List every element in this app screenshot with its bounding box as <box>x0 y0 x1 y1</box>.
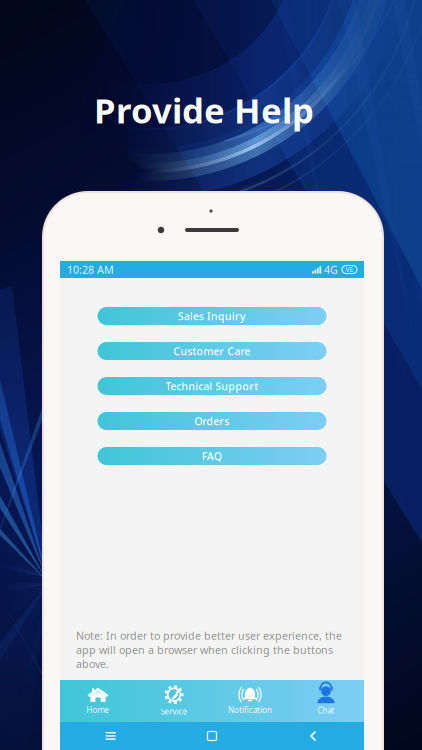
staticText: Chat <box>317 705 334 716</box>
button[interactable]: Orders <box>97 412 326 430</box>
staticText: Note: In order to provide better user ex… <box>76 628 342 671</box>
staticText: 10:28 AM <box>67 262 114 277</box>
staticText: Service <box>160 706 187 717</box>
button[interactable]: Home <box>60 680 136 722</box>
button[interactable]: FAQ <box>97 447 326 465</box>
button[interactable]: Service <box>136 680 212 722</box>
staticText: Provide Help <box>94 87 314 133</box>
button[interactable]: Sales Inquiry <box>97 307 326 325</box>
button[interactable]: Home <box>161 731 263 740</box>
staticText: Notification <box>228 705 272 715</box>
staticText: Orders <box>194 414 229 428</box>
button[interactable]: Technical Support <box>97 377 326 395</box>
staticText: Home <box>86 705 109 715</box>
button[interactable]: Customer Care <box>97 342 326 360</box>
button[interactable]: Chat <box>288 680 364 722</box>
staticText: VE <box>345 265 353 274</box>
staticText: Technical Support <box>165 379 258 393</box>
staticText: 4G <box>324 262 338 277</box>
button[interactable]: Notification <box>212 680 288 722</box>
staticText: FAQ <box>202 449 222 463</box>
button[interactable]: Recents <box>60 732 161 740</box>
staticText: Sales Inquiry <box>178 309 246 323</box>
button[interactable]: Back <box>263 731 364 741</box>
staticText: Customer Care <box>173 344 250 358</box>
